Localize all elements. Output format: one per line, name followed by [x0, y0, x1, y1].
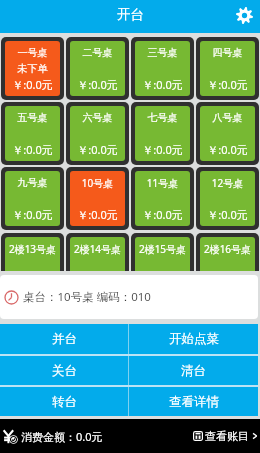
button[interactable]: 2楼16号桌: [200, 237, 255, 271]
staticText: ￥:0.0元: [70, 207, 125, 222]
staticText: 四号桌: [200, 46, 255, 59]
button[interactable]: 三号桌: [135, 41, 190, 96]
staticText: ￥:0.0元: [5, 142, 60, 157]
staticText: ￥:0.0元: [200, 207, 255, 222]
button[interactable]: 清台: [129, 356, 258, 385]
staticText: ￥:0.0元: [135, 207, 190, 222]
staticText: 消费金额：0.0元: [21, 429, 103, 444]
staticText: 2楼15号桌: [135, 242, 190, 256]
staticText: 10号桌: [70, 176, 125, 190]
staticText: 11号桌: [135, 176, 190, 190]
staticText: 五号桌: [5, 111, 60, 124]
staticText: ￥:0.0元: [200, 77, 255, 92]
button[interactable]: 2楼14号桌: [70, 237, 125, 271]
button[interactable]: 六号桌: [70, 106, 125, 161]
staticText: 六号桌: [70, 111, 125, 124]
staticText: ￥:0.0元: [135, 77, 190, 92]
staticText: ￥:0.0元: [5, 77, 60, 92]
button[interactable]: 八号桌: [200, 106, 255, 161]
button[interactable]: 11号桌: [135, 171, 190, 226]
staticText: 12号桌: [200, 176, 255, 190]
button[interactable]: 查看详情: [129, 387, 258, 416]
staticText: ￥:0.0元: [70, 77, 125, 92]
staticText: 查看账目: [205, 429, 249, 443]
staticText: ￥:0.0元: [70, 142, 125, 157]
staticText: 转台: [52, 394, 77, 410]
staticText: 二号桌: [70, 46, 125, 59]
staticText: 七号桌: [135, 111, 190, 124]
staticText: ￥:0.0元: [200, 142, 255, 157]
staticText: 一号桌: [5, 46, 60, 59]
staticText: 未下单: [5, 62, 60, 75]
staticText: 开始点菜: [169, 331, 219, 347]
staticText: 九号桌: [5, 176, 60, 189]
button[interactable]: 一号桌: [5, 41, 60, 96]
button[interactable]: Settings: [231, 2, 257, 28]
button[interactable]: 并台: [0, 324, 128, 354]
staticText: ￥:0.0元: [5, 207, 60, 222]
staticText: 2楼16号桌: [200, 242, 255, 256]
staticText: ￥:0.0元: [135, 142, 190, 157]
button[interactable]: 查看账目: [193, 429, 259, 443]
button[interactable]: 12号桌: [200, 171, 255, 226]
button[interactable]: 开始点菜: [129, 324, 258, 354]
staticText: 八号桌: [200, 111, 255, 124]
button[interactable]: 2楼15号桌: [135, 237, 190, 271]
staticText: 清台: [181, 363, 206, 379]
button[interactable]: 七号桌: [135, 106, 190, 161]
staticText: 2楼14号桌: [70, 242, 125, 256]
button[interactable]: 关台: [0, 356, 128, 385]
button[interactable]: 九号桌: [5, 171, 60, 226]
button[interactable]: 二号桌: [70, 41, 125, 96]
staticText: 三号桌: [135, 46, 190, 59]
staticText: 桌台：10号桌 编码：010: [23, 289, 151, 305]
staticText: 开台: [117, 6, 144, 23]
staticText: 关台: [52, 363, 77, 379]
staticText: 2楼13号桌: [5, 242, 60, 256]
button[interactable]: 2楼13号桌: [5, 237, 60, 271]
button[interactable]: 四号桌: [200, 41, 255, 96]
staticText: 并台: [52, 331, 77, 347]
button[interactable]: 转台: [0, 387, 128, 416]
button[interactable]: 10号桌: [70, 171, 125, 226]
button[interactable]: 五号桌: [5, 106, 60, 161]
staticText: 查看详情: [169, 394, 219, 410]
